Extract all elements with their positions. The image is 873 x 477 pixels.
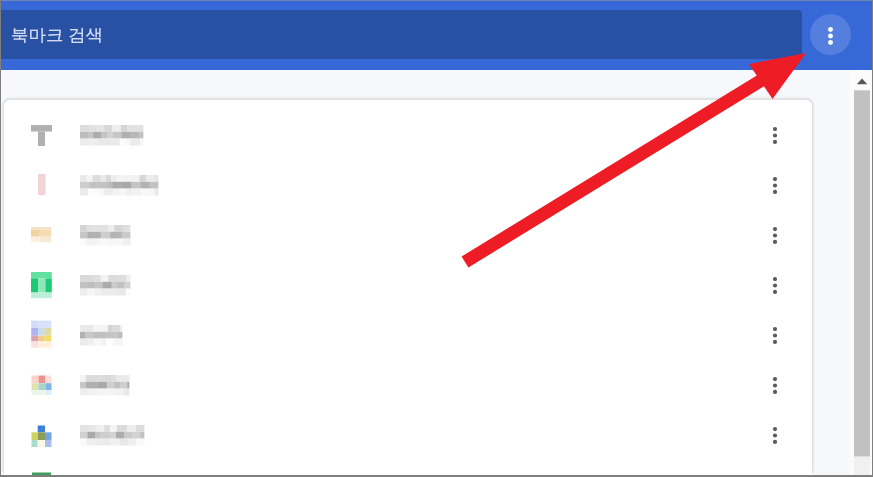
button[interactable]: Row options <box>737 210 812 260</box>
button[interactable]: Row options <box>4 460 812 477</box>
button[interactable]: Row options <box>4 360 812 410</box>
button[interactable]: Row options <box>737 260 812 310</box>
button[interactable]: Row options <box>4 210 812 260</box>
button[interactable]: 북마크 검색 <box>0 10 802 59</box>
button[interactable]: Row options <box>4 410 812 460</box>
button[interactable]: Row options <box>737 110 812 160</box>
button[interactable]: Row options <box>737 310 812 360</box>
button[interactable]: Row options <box>737 360 812 410</box>
button[interactable]: Row options <box>4 110 812 160</box>
button[interactable]: Row options <box>4 310 812 360</box>
other: Scroll bar <box>849 70 873 477</box>
button[interactable]: Row options <box>737 160 812 210</box>
button[interactable]: Row options <box>737 460 812 477</box>
button[interactable]: Row options <box>4 160 812 210</box>
button[interactable]: Row options <box>4 260 812 310</box>
button[interactable]: More options <box>810 14 851 55</box>
staticText: 북마크 검색 <box>11 22 104 46</box>
button[interactable]: Row options <box>737 410 812 460</box>
